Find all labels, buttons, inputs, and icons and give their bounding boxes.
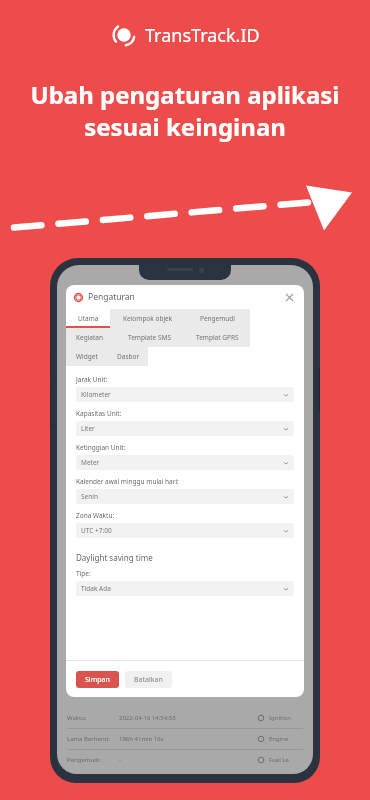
staticText: Dasbor: [117, 352, 140, 361]
staticText: 2022-04-16 14:54:53: [119, 714, 257, 722]
button[interactable]: Kilometer: [76, 387, 294, 402]
staticText: UTC +7:00: [81, 526, 283, 535]
button[interactable]: Kegiatan: [66, 328, 114, 347]
staticText: Kegiatan: [76, 333, 104, 342]
staticText: Template SMS: [128, 333, 171, 342]
button[interactable]: Dasbor: [108, 347, 148, 366]
button[interactable]: Kelompok objek: [110, 309, 186, 328]
button[interactable]: Meter: [76, 455, 294, 470]
staticText: Liter: [81, 424, 283, 433]
staticText: Kelompok objek: [123, 314, 173, 323]
button[interactable]: UTC +7:00: [76, 523, 294, 538]
staticText: Zona Waktu:: [76, 511, 115, 520]
staticText: Simpan: [85, 675, 110, 685]
staticText: Senin: [81, 492, 283, 501]
staticText: Ubah pengaturan aplikasi sesuai keingina…: [12, 78, 358, 143]
staticText: Fuel Le: [269, 756, 303, 764]
staticText: Batalkan: [134, 675, 163, 685]
staticText: Kilometer: [81, 390, 283, 399]
staticText: Lama Berhenti:: [67, 735, 119, 743]
button[interactable]: Templat GPRS: [184, 328, 250, 347]
button[interactable]: Widget: [66, 347, 108, 366]
button[interactable]: Pengemudi: [186, 309, 250, 328]
staticText: Ignition: [269, 714, 303, 722]
staticText: Jarak Unit:: [76, 375, 108, 384]
staticText: Daylight saving time: [76, 552, 153, 563]
button[interactable]: Batalkan: [125, 671, 172, 688]
staticText: Meter: [81, 458, 283, 467]
button[interactable]: Liter: [76, 421, 294, 436]
staticText: Engine: [269, 735, 303, 743]
button[interactable]: Template SMS: [114, 328, 184, 347]
staticText: Waktu:: [67, 714, 119, 722]
staticText: Kapasitas Unit:: [76, 409, 122, 418]
staticText: Utama: [78, 314, 99, 323]
staticText: Templat GPRS: [196, 333, 239, 342]
staticText: Pengemudi:: [67, 756, 119, 764]
staticText: Ketinggian Unit:: [76, 443, 126, 452]
staticText: Kalender awal minggu mulai hari:: [76, 477, 179, 486]
button[interactable]: Utama: [66, 309, 110, 328]
staticText: TransTrack.ID: [145, 23, 260, 48]
staticText: 196h 41min 16s: [119, 735, 257, 743]
staticText: Tidak Ada: [81, 584, 283, 593]
staticText: Pengemudi: [200, 314, 236, 323]
staticText: Widget: [76, 352, 98, 361]
button[interactable]: Close: [282, 290, 296, 304]
button[interactable]: Tidak Ada: [76, 581, 294, 596]
button[interactable]: Senin: [76, 489, 294, 504]
staticText: Pengaturan: [88, 291, 135, 303]
other: Settings: [74, 293, 83, 302]
staticText: Tipe:: [76, 569, 91, 578]
button[interactable]: Simpan: [76, 671, 119, 688]
